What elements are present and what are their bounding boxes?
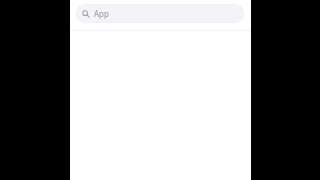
other: Search [82,10,90,18]
button[interactable]: Search [76,4,244,23]
staticText: App [94,8,109,19]
